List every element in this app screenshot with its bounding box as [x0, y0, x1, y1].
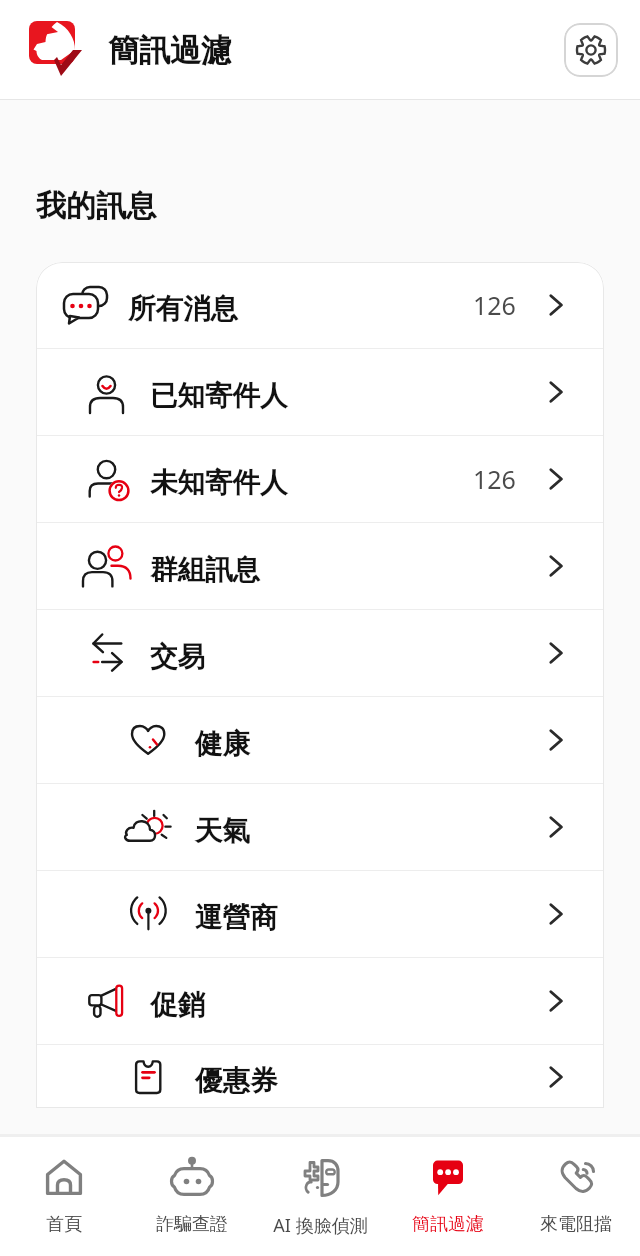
staticText: 詐騙查證 — [156, 1213, 228, 1236]
staticText: AI 換臉偵測 — [273, 1213, 368, 1238]
button[interactable]: AI 換臉偵測 — [256, 1137, 384, 1238]
staticText: 簡訊過濾 — [108, 31, 232, 70]
button[interactable]: 已知寄件人 — [36, 349, 604, 435]
button[interactable]: 交易 — [36, 610, 604, 696]
staticText: 天氣 — [195, 814, 250, 849]
staticText: 已知寄件人 — [150, 379, 288, 414]
staticText: 優惠券 — [195, 1064, 278, 1099]
button[interactable]: 首頁 — [0, 1137, 128, 1236]
staticText: 簡訊過濾 — [412, 1213, 484, 1236]
button[interactable]: 健康 — [36, 697, 604, 783]
button[interactable]: 天氣 — [36, 784, 604, 870]
button[interactable]: 未知寄件人 — [36, 436, 604, 522]
button[interactable]: 來電阻擋 — [512, 1137, 640, 1236]
button[interactable]: 簡訊過濾 — [384, 1137, 512, 1236]
button[interactable]: 運營商 — [36, 871, 604, 957]
staticText: 運營商 — [195, 901, 278, 936]
staticText: 交易 — [150, 640, 205, 675]
button[interactable]: Settings — [564, 23, 618, 77]
staticText: 首頁 — [46, 1213, 82, 1236]
button[interactable]: 促銷 — [36, 958, 604, 1044]
button[interactable]: 所有消息 — [36, 262, 604, 348]
staticText: 促銷 — [150, 988, 205, 1023]
staticText: 所有消息 — [128, 292, 238, 327]
staticText: 未知寄件人 — [150, 466, 288, 501]
button[interactable]: 優惠券 — [36, 1045, 604, 1108]
staticText: 我的訊息 — [36, 187, 156, 225]
button[interactable]: 詐騙查證 — [128, 1137, 256, 1236]
staticText: 126 — [473, 288, 516, 322]
staticText: 健康 — [195, 727, 250, 762]
staticText: 群組訊息 — [150, 553, 260, 588]
button[interactable]: 群組訊息 — [36, 523, 604, 609]
staticText: 來電阻擋 — [540, 1213, 612, 1236]
staticText: 126 — [473, 462, 516, 496]
